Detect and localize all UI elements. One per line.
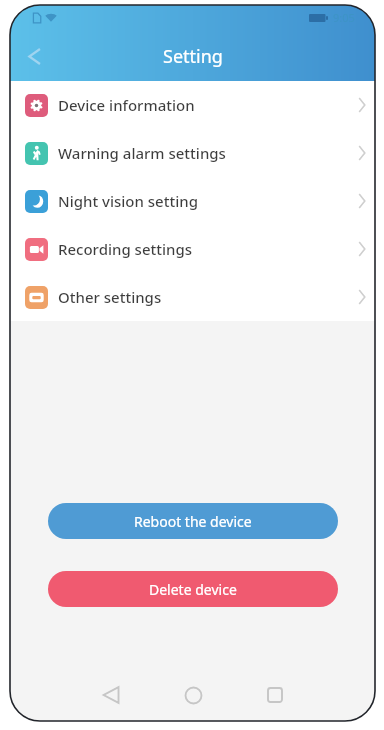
button[interactable]: Back — [89, 673, 133, 717]
button[interactable]: Reboot the device — [48, 503, 338, 539]
staticText: Delete device — [149, 580, 237, 599]
staticText: Warning alarm settings — [58, 143, 226, 163]
button[interactable]: Recording settings — [10, 225, 375, 273]
button[interactable]: Device information — [10, 81, 375, 129]
staticText: Device information — [58, 95, 195, 115]
staticText: Reboot the device — [134, 512, 252, 531]
staticText: Other settings — [58, 287, 162, 307]
staticText: Setting — [163, 44, 223, 69]
staticText: Night vision setting — [58, 191, 198, 211]
button[interactable]: Night vision setting — [10, 177, 375, 225]
button[interactable]: Delete device — [48, 571, 338, 607]
button[interactable]: Other settings — [10, 273, 375, 321]
staticText: Recording settings — [58, 239, 193, 259]
button[interactable]: Home — [171, 673, 215, 717]
button[interactable]: Warning alarm settings — [10, 129, 375, 177]
button[interactable]: Back — [12, 34, 56, 78]
button[interactable]: Recents — [253, 673, 297, 717]
staticText: 9:05 — [333, 10, 355, 25]
